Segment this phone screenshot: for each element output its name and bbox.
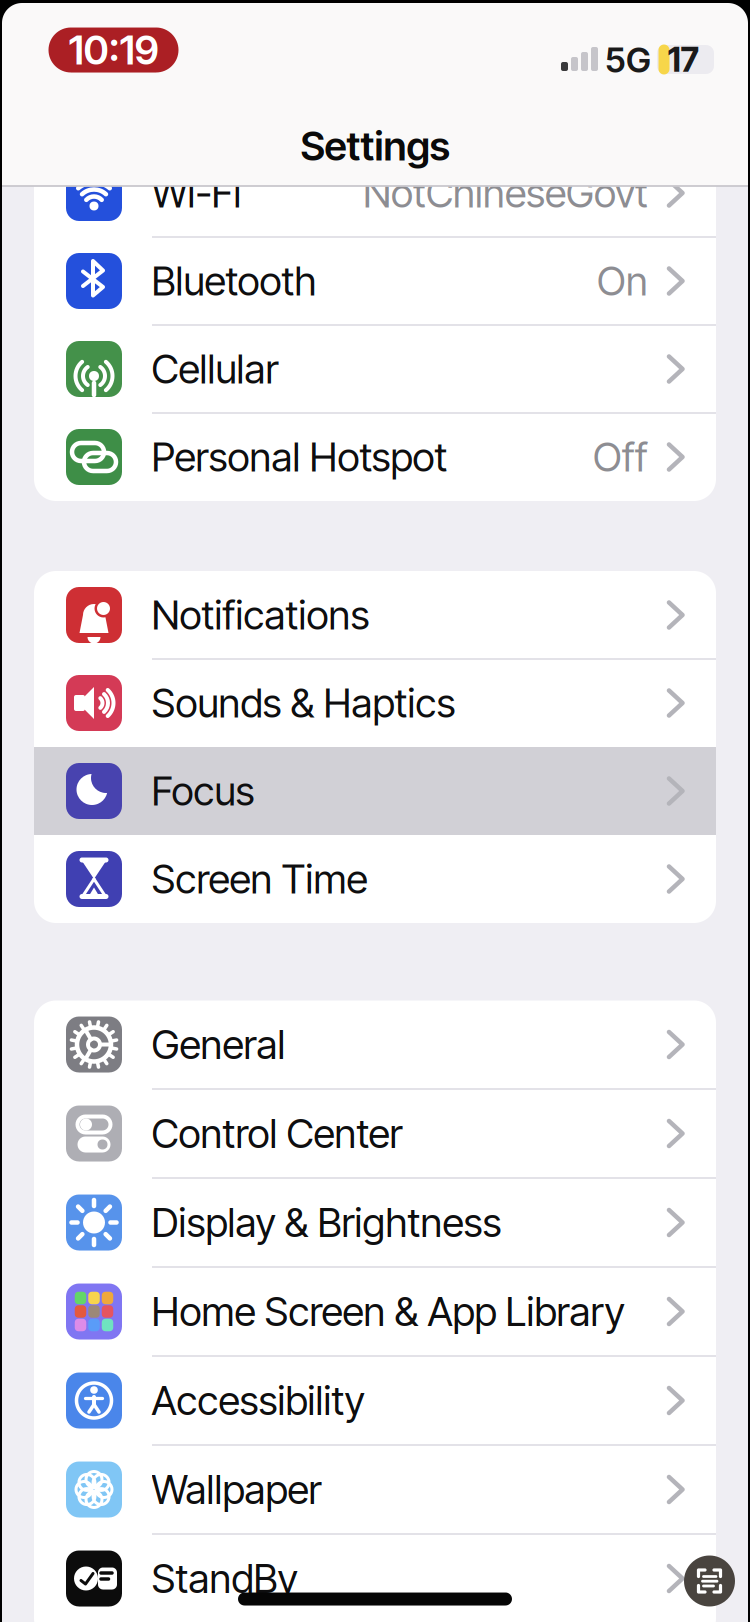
button[interactable]: StandBy: [34, 1534, 716, 1622]
staticText: Sounds & Haptics: [151, 679, 455, 727]
button[interactable]: 10:19: [48, 27, 178, 72]
staticText: Off: [593, 433, 648, 481]
staticText: Control Center: [151, 1109, 402, 1158]
button[interactable]: Screen capture: [677, 1549, 741, 1613]
button[interactable]: Notifications: [34, 571, 716, 659]
button[interactable]: Personal Hotspot: [34, 413, 716, 501]
staticText: StandBy: [151, 1554, 297, 1603]
button[interactable]: Bluetooth: [34, 237, 716, 325]
button[interactable]: Sounds & Haptics: [34, 659, 716, 747]
staticText: Accessibility: [151, 1376, 364, 1425]
button[interactable]: General: [34, 1000, 716, 1088]
button[interactable]: Cellular: [34, 325, 716, 413]
staticText: Screen Time: [151, 855, 367, 903]
button[interactable]: Control Center: [34, 1089, 716, 1177]
button[interactable]: Accessibility: [34, 1356, 716, 1444]
staticText: Personal Hotspot: [151, 433, 447, 481]
button[interactable]: Focus: [34, 747, 716, 835]
staticText: Notifications: [151, 591, 369, 639]
staticText: Settings: [300, 122, 449, 170]
staticText: Home Screen & App Library: [151, 1287, 624, 1336]
staticText: Bluetooth: [151, 257, 316, 305]
staticText: Wallpaper: [151, 1465, 321, 1514]
staticText: Focus: [151, 767, 254, 815]
button[interactable]: Wallpaper: [34, 1445, 716, 1533]
button[interactable]: Display & Brightness: [34, 1178, 716, 1266]
button[interactable]: Wi-Fi: [34, 149, 716, 237]
staticText: Wi-Fi: [151, 169, 241, 217]
button[interactable]: Home Screen & App Library: [34, 1267, 716, 1355]
staticText: Cellular: [151, 345, 278, 393]
staticText: 5G: [605, 39, 651, 81]
staticText: On: [597, 257, 648, 305]
button[interactable]: Screen Time: [34, 835, 716, 923]
staticText: General: [151, 1020, 285, 1069]
staticText: 17: [667, 39, 698, 80]
staticText: Display & Brightness: [151, 1198, 501, 1247]
staticText: NotChineseGovt: [363, 169, 648, 217]
staticText: 10:19: [68, 26, 158, 74]
